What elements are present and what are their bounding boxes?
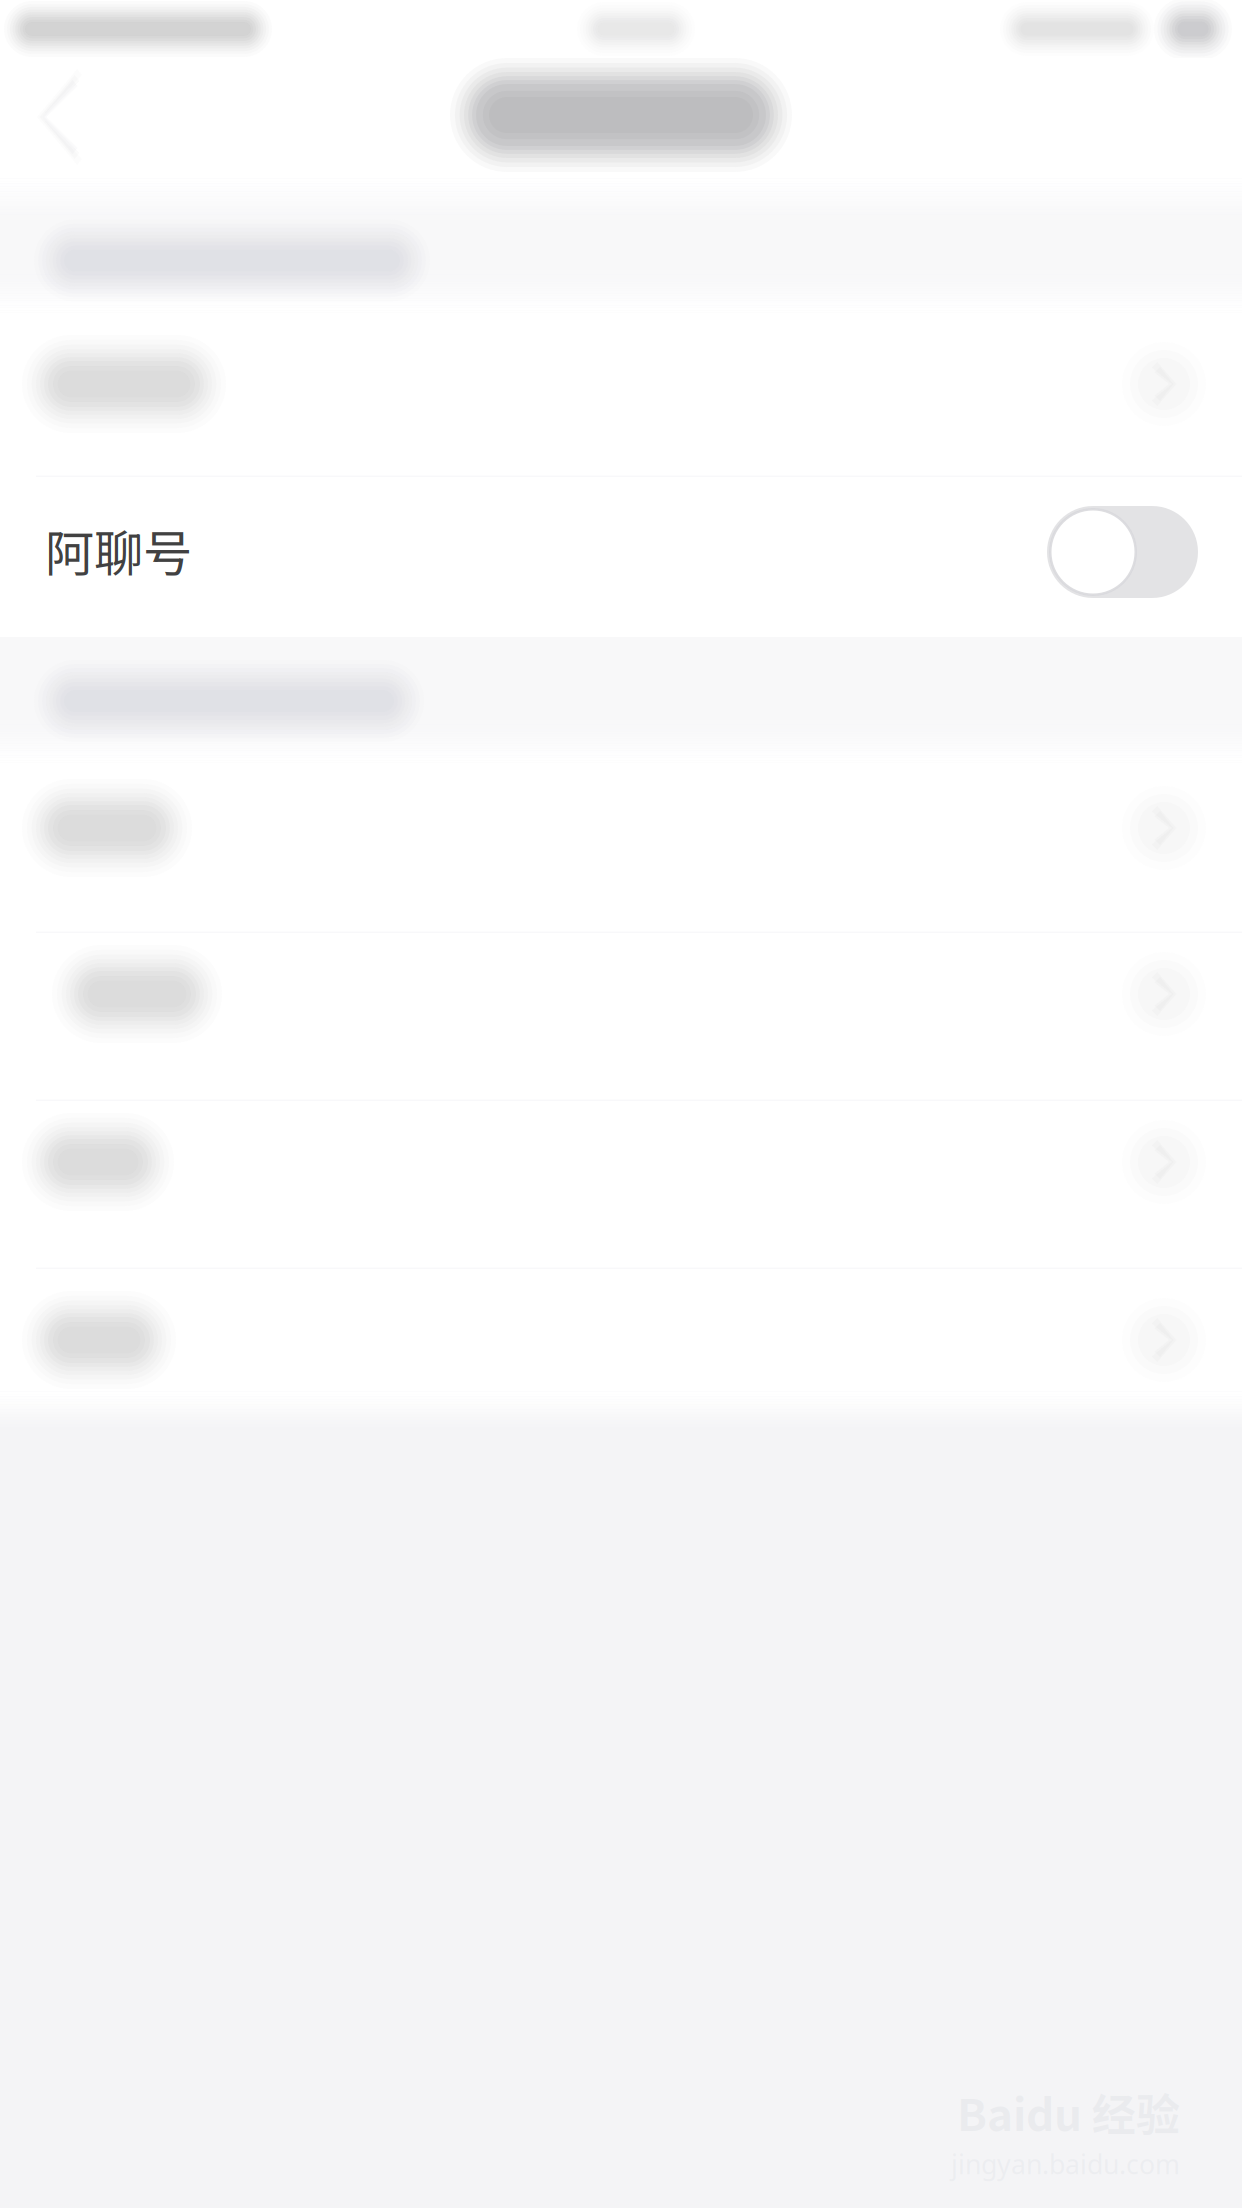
- staticText: 阿聊号: [45, 514, 192, 586]
- button[interactable]: [0, 765, 1242, 931]
- button[interactable]: [0, 933, 1242, 1099]
- button[interactable]: 阿聊号: [0, 477, 1242, 637]
- staticText: Baidu 经验: [957, 2080, 1180, 2144]
- button[interactable]: [0, 1101, 1242, 1267]
- button[interactable]: [0, 1269, 1242, 1389]
- button[interactable]: [0, 315, 1242, 475]
